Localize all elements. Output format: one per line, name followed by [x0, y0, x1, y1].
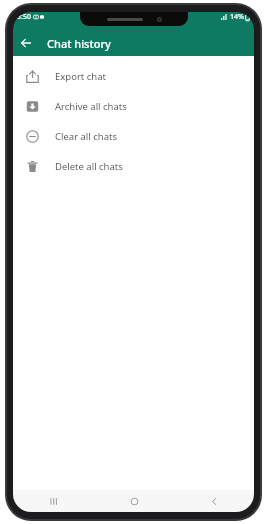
staticText: Chat history	[47, 36, 111, 51]
button[interactable]: Back	[13, 30, 39, 56]
staticText: Export chat	[55, 70, 106, 83]
staticText: Archive all chats	[55, 100, 127, 113]
staticText: Delete all chats	[55, 160, 123, 173]
button[interactable]: Home	[94, 490, 174, 512]
staticText: 3:50	[17, 12, 31, 22]
staticText: Clear all chats	[55, 130, 117, 143]
button[interactable]: Recent apps	[13, 490, 94, 512]
button[interactable]: Export chat	[13, 61, 254, 91]
staticText: 14%	[230, 12, 244, 22]
button[interactable]: Delete all chats	[13, 151, 254, 181]
button[interactable]: Back	[174, 490, 254, 512]
button[interactable]: Clear all chats	[13, 121, 254, 151]
button[interactable]: Archive all chats	[13, 91, 254, 121]
